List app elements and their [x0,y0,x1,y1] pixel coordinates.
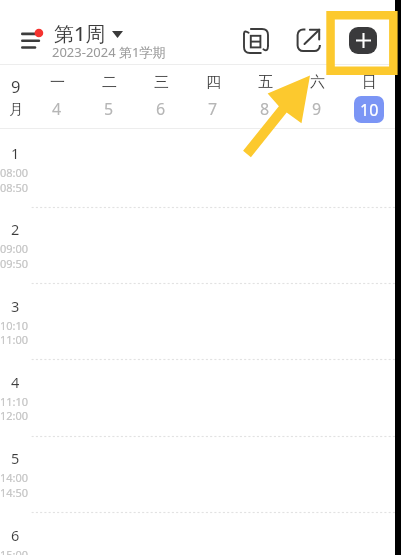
staticText: 8 [260,98,270,120]
staticText: 六 [310,73,325,92]
button[interactable]: 二 [83,65,135,128]
button[interactable]: 日 [343,65,395,128]
staticText: 4 [52,98,62,120]
staticText: 日 [362,73,377,92]
staticText: 10:10 [0,318,29,333]
staticText: 11:00 [0,332,29,347]
staticText: 08:50 [0,180,29,195]
staticText: 五 [258,73,273,92]
staticText: 09:00 [0,241,29,256]
staticText: 12:00 [0,408,29,423]
staticText: 第1周 [54,20,106,47]
staticText: 5 [11,448,20,468]
staticText: 6 [11,525,20,545]
button[interactable]: Menu [20,26,44,50]
button[interactable]: 六 [291,65,343,128]
staticText: 二 [102,73,117,92]
staticText: 月 [9,101,23,119]
staticText: 4 [11,372,20,392]
button[interactable]: Share [297,29,321,52]
staticText: 一 [50,73,65,92]
staticText: 14:00 [0,470,29,485]
button[interactable]: Add [349,27,377,54]
staticText: 9 [11,75,21,97]
staticText: 1 [11,143,20,163]
staticText: 10 [360,99,379,121]
staticText: 11:10 [0,394,29,409]
staticText: 三 [154,73,169,92]
button[interactable]: Switch view [243,28,269,54]
staticText: 7 [208,98,218,120]
button[interactable]: 一 [31,65,83,128]
staticText: 6 [156,98,166,120]
button[interactable]: 四 [187,65,239,128]
button[interactable]: 五 [239,65,291,128]
staticText: 3 [11,296,20,316]
staticText: 09:50 [0,256,29,271]
staticText: 14:50 [0,485,29,500]
staticText: 9 [312,98,322,120]
staticText: 四 [206,73,221,92]
staticText: 2 [11,219,20,239]
staticText: 2023-2024 第1学期 [52,43,166,61]
staticText: 5 [104,98,114,120]
staticText: 08:00 [0,165,29,180]
button[interactable]: 三 [135,65,187,128]
staticText: 15:00 [0,547,29,555]
